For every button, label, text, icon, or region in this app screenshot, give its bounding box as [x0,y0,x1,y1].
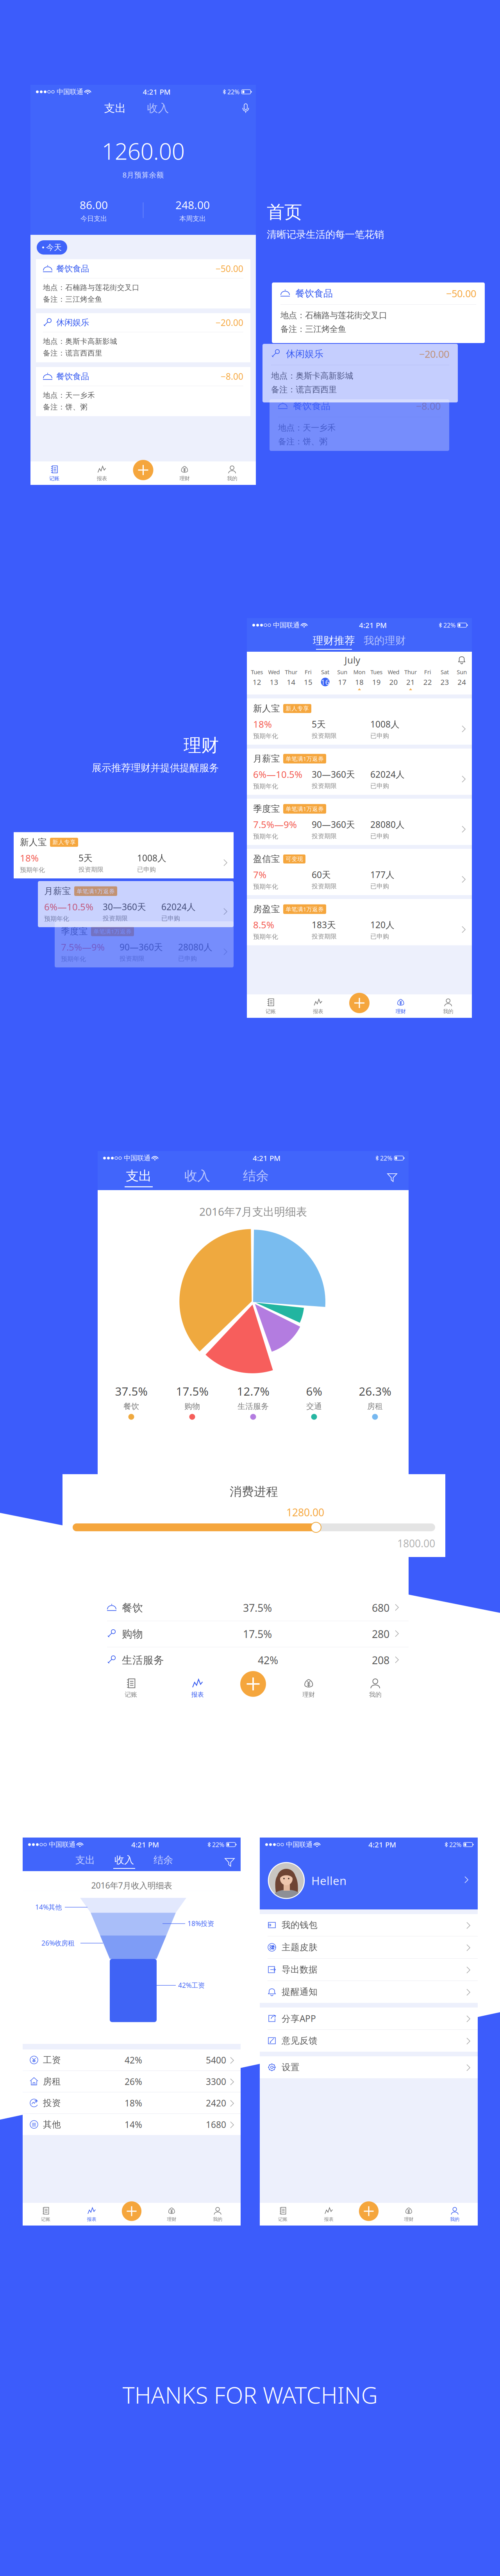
button[interactable]: 结余 [227,1168,285,1187]
button[interactable]: 理财 [386,2203,432,2226]
button[interactable]: 设置 [260,2056,478,2078]
button[interactable]: 我的 [342,1673,409,1703]
button[interactable]: 我的 [424,994,472,1018]
staticText: 4:21 PM [131,1840,159,1849]
button[interactable]: Voice input [243,104,256,113]
button[interactable]: Filter [387,1173,409,1182]
staticText: 报表 [313,1008,323,1015]
button[interactable]: 支出 [109,1168,168,1187]
staticText: 15 [304,677,312,687]
staticText: 单笔满1万返券 [286,905,324,913]
button[interactable]: 我的 [208,461,256,485]
button[interactable]: 工资 [23,2049,241,2071]
button[interactable]: 季度宝 [55,921,234,967]
staticText: 地点： [271,371,296,381]
button[interactable]: 投资 [23,2092,241,2114]
staticText: 中国联通 [49,1840,75,1849]
button[interactable]: Add [238,1669,268,1699]
button[interactable]: 餐饮食品 [30,367,256,416]
staticText: 天一乡禾 [65,391,95,400]
staticText: 房租 [367,1402,383,1411]
staticText: 新人专享 [286,705,309,712]
staticText: 今天 [46,243,62,252]
staticText: THANKS FOR WATCHING [122,2379,378,2410]
button[interactable]: 结余 [144,1854,183,1869]
button[interactable]: 生活服务 [98,1647,409,1673]
staticText: 投资期限 [103,915,128,922]
button[interactable]: Add [357,2200,380,2223]
staticText: 8月预算余额 [122,170,164,180]
button[interactable]: Notifications [458,656,472,664]
button[interactable]: 房盈宝 [247,899,472,945]
button[interactable]: 理财 [161,461,208,485]
button[interactable]: 导出数据 [260,1959,478,1981]
button[interactable]: 月薪宝 [38,881,234,927]
staticText: 生活服务 [122,1654,164,1667]
button[interactable]: Filter [225,1858,241,1865]
staticText: 预期年化 [44,915,69,923]
staticText: 可变现 [286,855,303,863]
button[interactable]: 收入 [137,102,179,115]
button[interactable]: 支出 [66,1854,105,1869]
button[interactable]: 我的理财 [359,634,410,650]
staticText: 预期年化 [253,833,278,840]
button[interactable]: 理财 [149,2203,195,2226]
button[interactable]: 分享APP [260,2008,478,2029]
button[interactable]: 报表 [294,994,342,1018]
button[interactable]: 理财 [377,994,424,1018]
staticText: 谎言西西里 [65,349,102,358]
button[interactable]: 记账 [98,1673,164,1703]
button[interactable]: 主题皮肤 [260,1936,478,1958]
button[interactable]: 我的钱包 [260,1914,478,1936]
button[interactable]: 餐饮食品 [30,259,256,308]
button[interactable]: 今天 [37,240,67,255]
button[interactable]: Add [120,2200,143,2223]
button[interactable]: Add [131,458,155,482]
button[interactable]: 理财 [275,1673,342,1703]
button[interactable]: 支出 [94,102,137,115]
staticText: 理财 [396,1008,406,1015]
button[interactable]: 报表 [78,461,126,485]
staticText: Tues [251,668,263,676]
button[interactable]: 报表 [164,1673,231,1703]
button[interactable]: 记账 [247,994,294,1018]
staticText: 投资期限 [312,782,337,790]
staticText: Fri [424,668,431,676]
staticText: 报表 [97,475,107,482]
button[interactable]: 月薪宝 [247,749,472,795]
button[interactable]: 休闲娱乐 [30,313,256,362]
staticText: 休闲娱乐 [286,348,323,360]
staticText: 餐饮食品 [293,400,330,412]
button[interactable]: 新人宝 [247,698,472,745]
staticText: 收入 [114,1854,134,1866]
staticText: 120人 [370,919,395,931]
button[interactable]: 意见反馈 [260,2030,478,2052]
staticText: 预期年化 [20,866,45,874]
button[interactable]: 购物 [98,1621,409,1647]
button[interactable]: 提醒通知 [260,1981,478,2003]
button[interactable]: 房租 [23,2071,241,2092]
staticText: 1680 [206,2119,226,2130]
button[interactable]: 理财推荐 [309,634,359,650]
button[interactable]: 盈信宝 [247,849,472,895]
staticText: 680 [372,1601,389,1615]
staticText: 备注： [271,384,296,395]
button[interactable]: 其他 [23,2114,241,2135]
button[interactable]: 我的 [432,2203,478,2226]
button[interactable]: Add [348,991,371,1015]
button[interactable]: 新人宝 [14,832,234,878]
button[interactable]: 我的 [195,2203,241,2226]
button[interactable]: 记账 [260,2203,306,2226]
button[interactable]: 餐饮 [98,1595,409,1621]
button[interactable]: 记账 [30,461,78,485]
button[interactable]: 季度宝 [247,799,472,845]
button[interactable]: Hellen [260,1852,478,1909]
staticText: 预期年化 [253,782,278,790]
button[interactable]: 收入 [168,1168,227,1187]
button[interactable]: 记账 [23,2203,69,2226]
staticText: 已申购 [161,915,180,922]
button[interactable]: 收入 [105,1854,144,1869]
button[interactable]: 报表 [306,2203,352,2226]
staticText: 房盈宝 [253,904,280,915]
button[interactable]: 报表 [69,2203,115,2226]
